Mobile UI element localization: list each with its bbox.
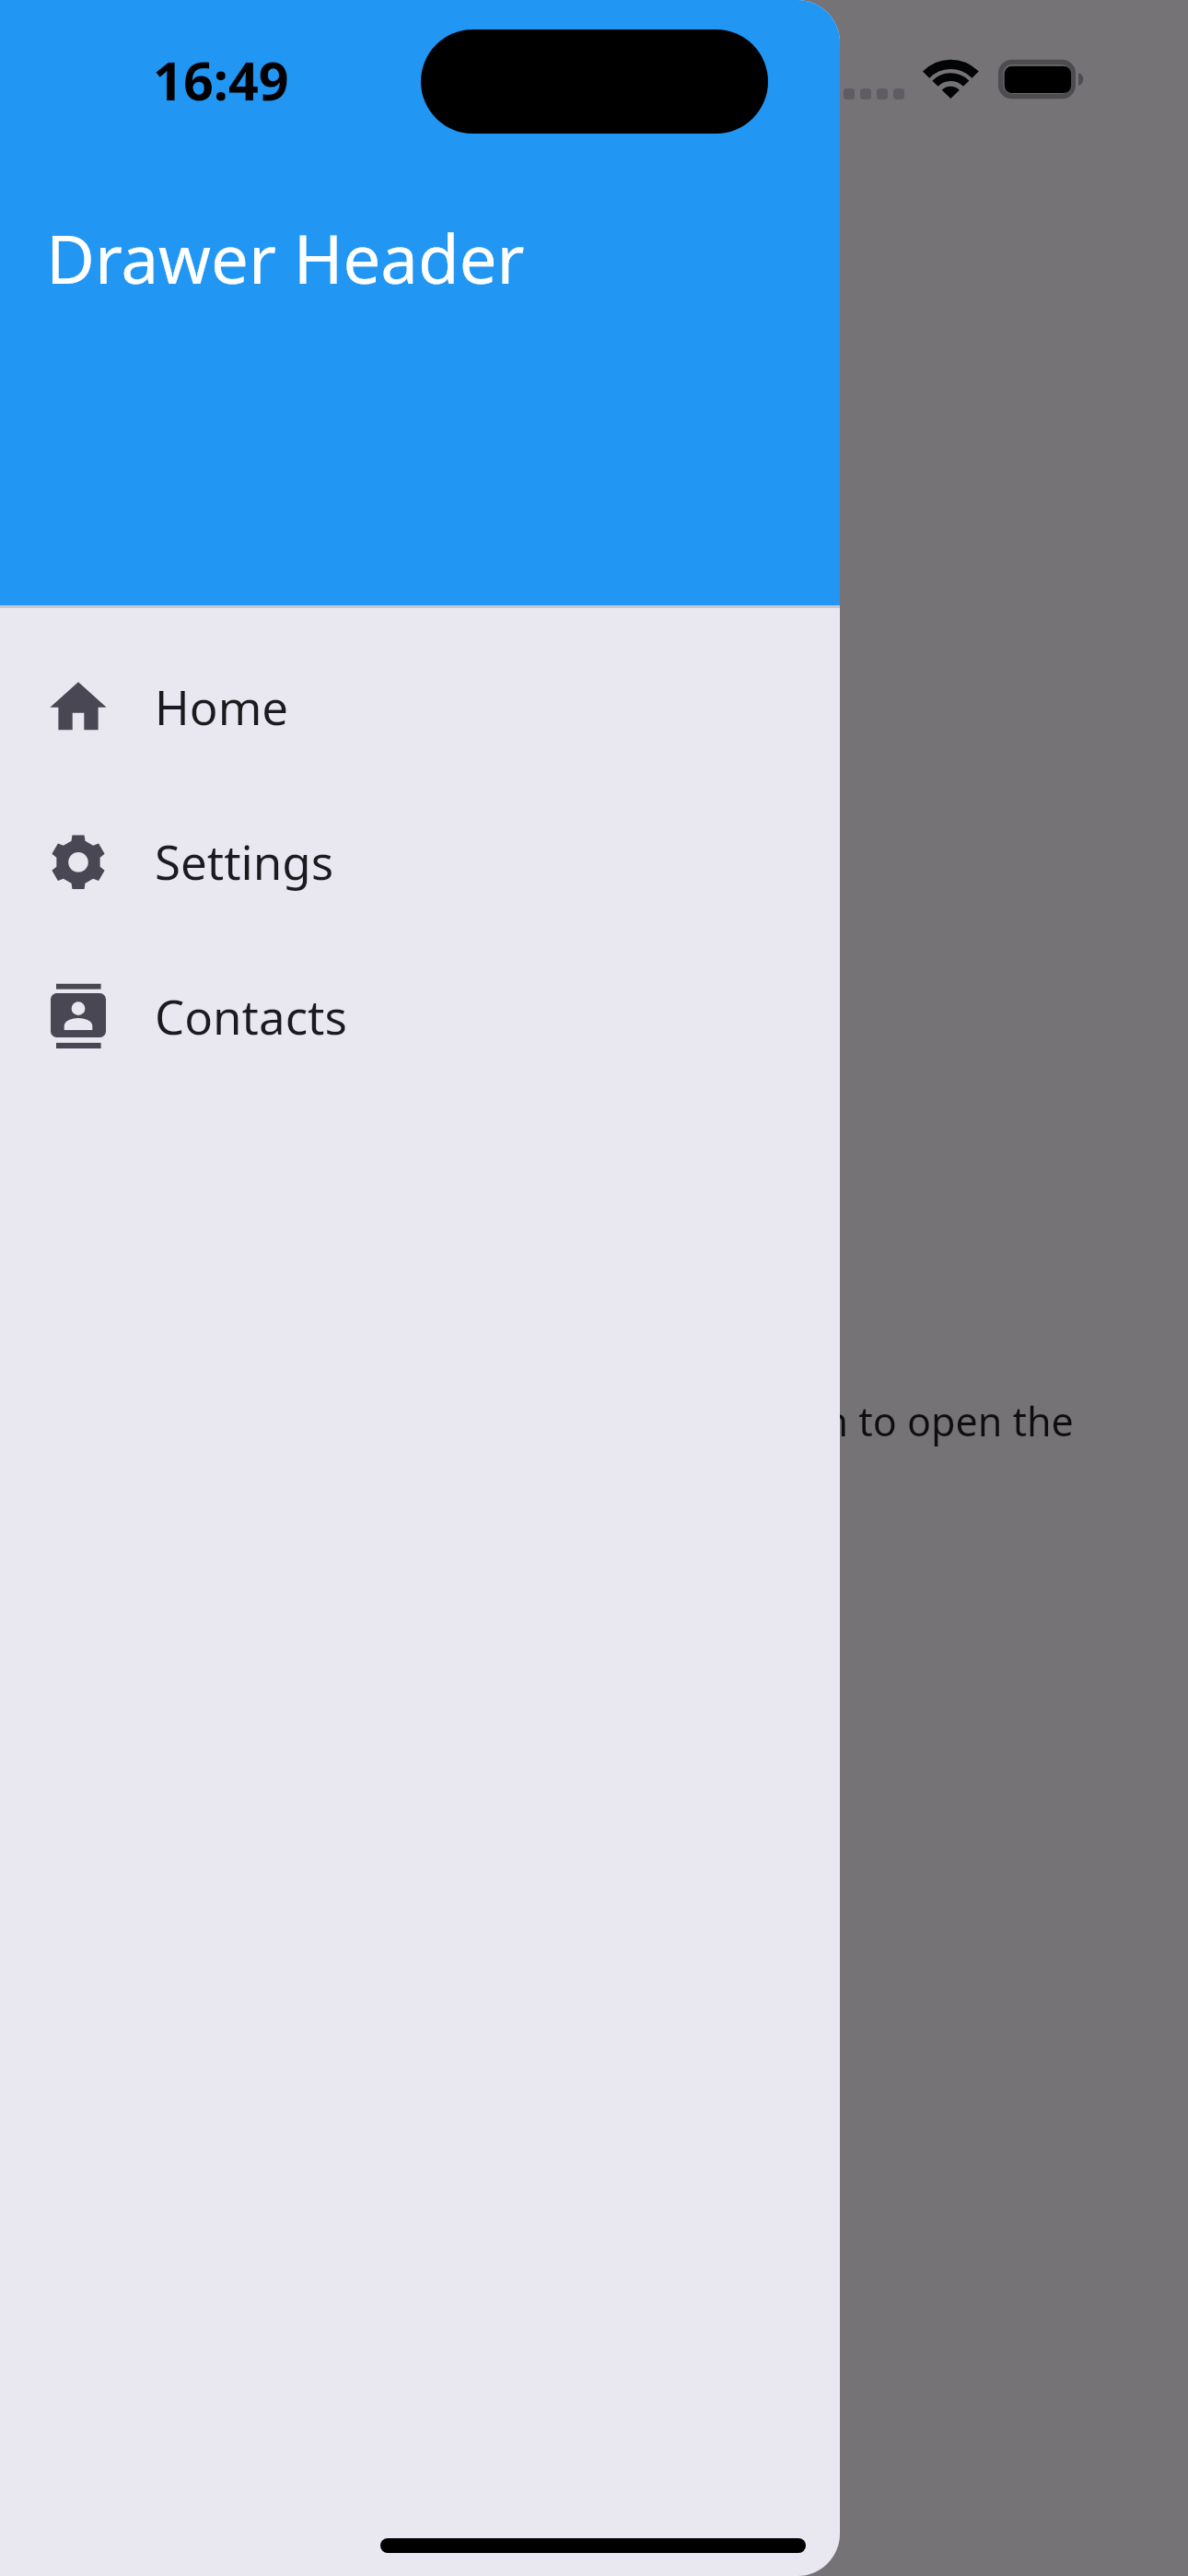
button[interactable]: Home bbox=[0, 628, 840, 783]
staticText: Home bbox=[155, 674, 289, 738]
button[interactable]: Close navigation drawer bbox=[0, 0, 1188, 2576]
button[interactable]: Settings bbox=[0, 783, 840, 938]
staticText: Swipe right or tap the menu icon to open… bbox=[239, 1394, 1074, 1448]
staticText: Settings bbox=[155, 829, 334, 893]
staticText: Drawer Header bbox=[46, 212, 525, 303]
button[interactable]: Contacts bbox=[0, 938, 840, 1093]
staticText: Contacts bbox=[155, 984, 347, 1048]
staticText: 16:49 bbox=[153, 44, 289, 116]
